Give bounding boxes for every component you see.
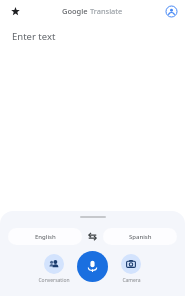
button[interactable]: Conversation [34,254,74,284]
button[interactable]: Spanish [103,228,177,245]
button[interactable]: Enter text [12,30,56,43]
staticText: Camera [122,277,141,284]
button[interactable]: Saved [7,3,23,19]
staticText: Conversation [38,277,70,284]
staticText: Translate [90,6,123,16]
button[interactable]: Camera [111,254,151,284]
button[interactable]: English [8,228,82,245]
button[interactable]: Account [164,4,178,18]
button[interactable]: Swap languages [82,227,103,245]
button[interactable]: Speak [77,251,108,282]
staticText: Spanish [129,233,152,241]
staticText: Google [62,6,88,16]
staticText: English [35,233,56,241]
